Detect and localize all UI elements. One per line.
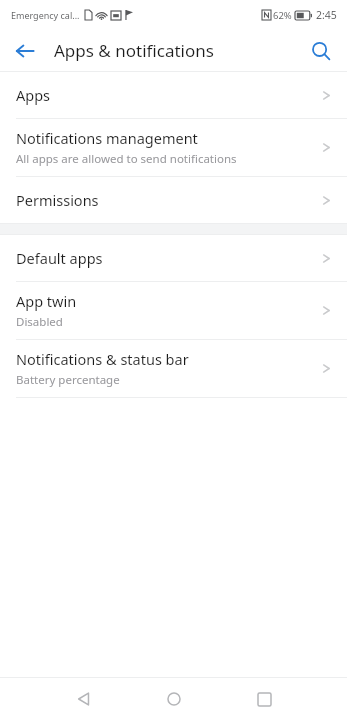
staticText: Permissions: [16, 190, 99, 210]
button[interactable]: Back: [53, 678, 115, 720]
staticText: Apps: [16, 85, 51, 105]
button[interactable]: Notifications management: [0, 119, 347, 176]
button[interactable]: Notifications & status bar: [0, 340, 347, 397]
button[interactable]: Default apps: [0, 235, 347, 281]
staticText: Emergency cal...: [11, 9, 80, 21]
staticText: 2:45: [316, 8, 337, 22]
button[interactable]: Search: [302, 32, 340, 70]
staticText: Notifications management: [16, 128, 198, 148]
staticText: Disabled: [16, 314, 63, 330]
button[interactable]: Permissions: [0, 177, 347, 223]
button[interactable]: Apps: [0, 72, 347, 118]
staticText: Notifications & status bar: [16, 349, 189, 369]
staticText: 62%: [273, 9, 292, 22]
staticText: All apps are allowed to send notificatio…: [16, 151, 237, 167]
staticText: Apps & notifications: [54, 39, 214, 62]
button[interactable]: Recent apps: [233, 678, 295, 720]
button[interactable]: Home: [143, 678, 205, 720]
button[interactable]: App twin: [0, 282, 347, 339]
button[interactable]: Back: [6, 32, 44, 70]
staticText: Battery percentage: [16, 372, 120, 388]
staticText: App twin: [16, 291, 77, 311]
staticText: Default apps: [16, 248, 103, 268]
